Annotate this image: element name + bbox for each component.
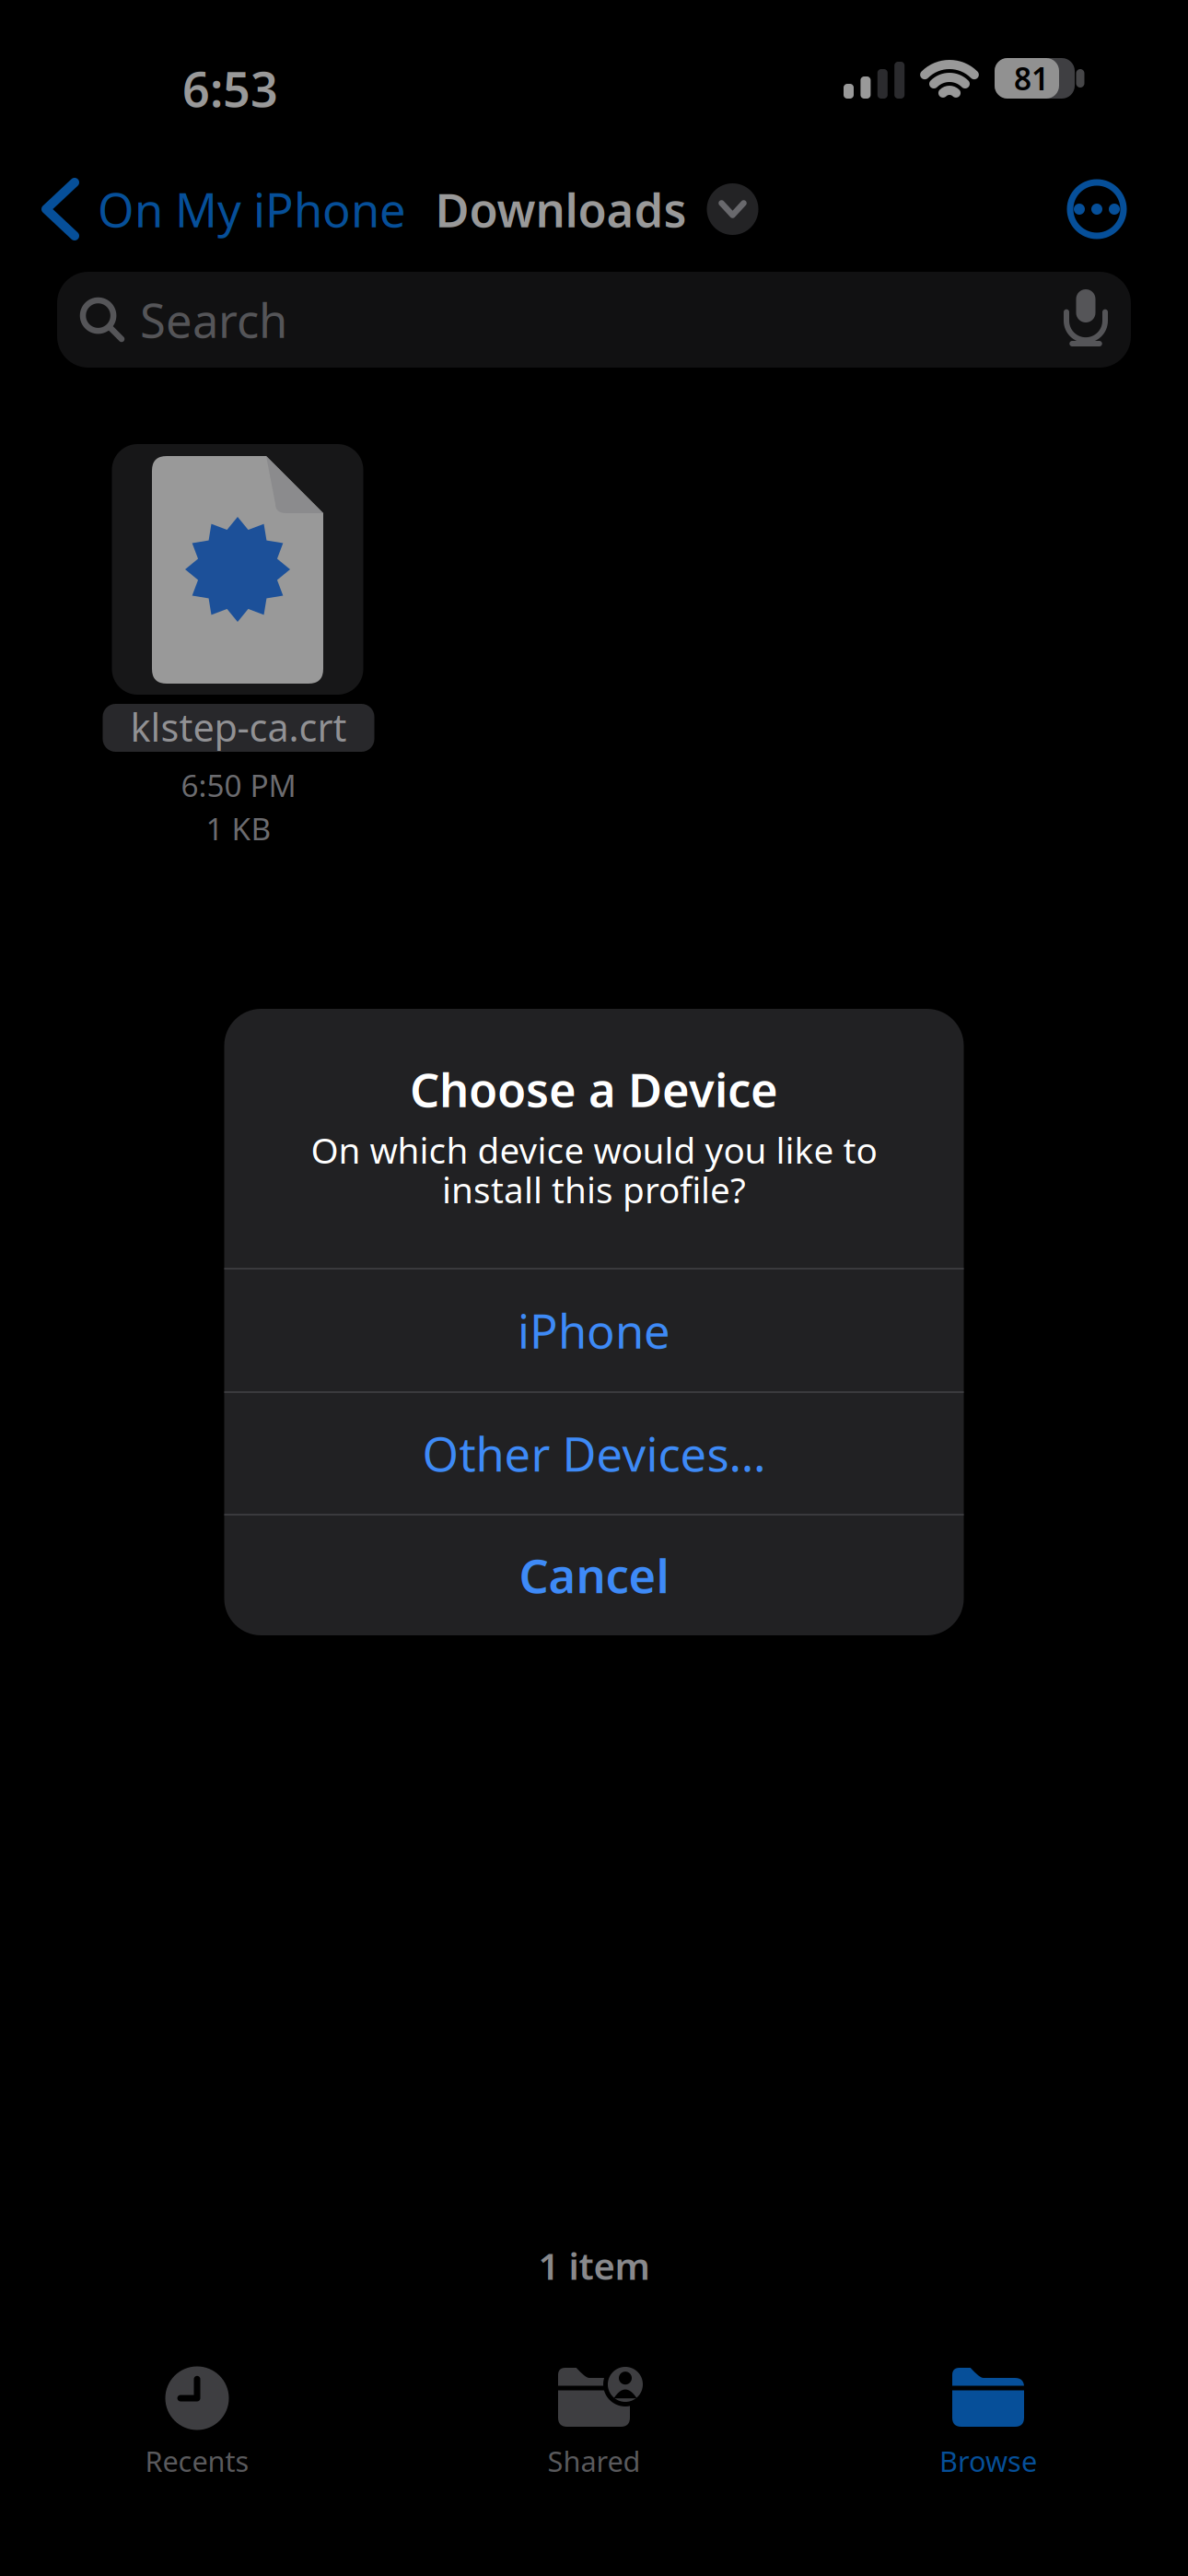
button[interactable]: Downloads — [435, 178, 758, 240]
button[interactable]: Search — [57, 272, 1131, 368]
button[interactable]: More — [1066, 179, 1127, 240]
button[interactable]: Other Devices… — [224, 1393, 964, 1514]
staticText: Downloads — [435, 178, 687, 240]
staticText: install this profile? — [442, 1166, 746, 1213]
staticText: 81 — [1014, 58, 1049, 99]
staticText: iPhone — [518, 1299, 670, 1361]
staticText: Browse — [939, 2442, 1037, 2480]
button[interactable]: iPhone — [224, 1270, 964, 1391]
staticText: Other Devices… — [422, 1422, 766, 1484]
button[interactable]: Shared — [493, 2340, 714, 2488]
staticText: 1 KB — [206, 808, 271, 849]
staticText: Search — [140, 289, 287, 351]
staticText: On which device would you like to — [311, 1126, 877, 1173]
staticText: Choose a Device — [410, 1058, 778, 1120]
staticText: klstep-ca.crt — [130, 702, 347, 752]
staticText: 6:50 PM — [181, 765, 296, 805]
button[interactable]: Cancel — [224, 1516, 964, 1634]
button[interactable]: Browse — [878, 2340, 1099, 2488]
staticText: On My iPhone — [98, 178, 406, 240]
button[interactable]: Recents — [87, 2340, 308, 2488]
staticText: 1 item — [538, 2241, 650, 2290]
button[interactable]: klstep-ca.crt — [99, 440, 378, 855]
staticText: 6:53 — [182, 57, 278, 120]
button[interactable]: On My iPhone — [46, 168, 617, 251]
staticText: Cancel — [519, 1544, 669, 1606]
staticText: Shared — [547, 2442, 641, 2480]
staticText: Recents — [145, 2442, 249, 2480]
